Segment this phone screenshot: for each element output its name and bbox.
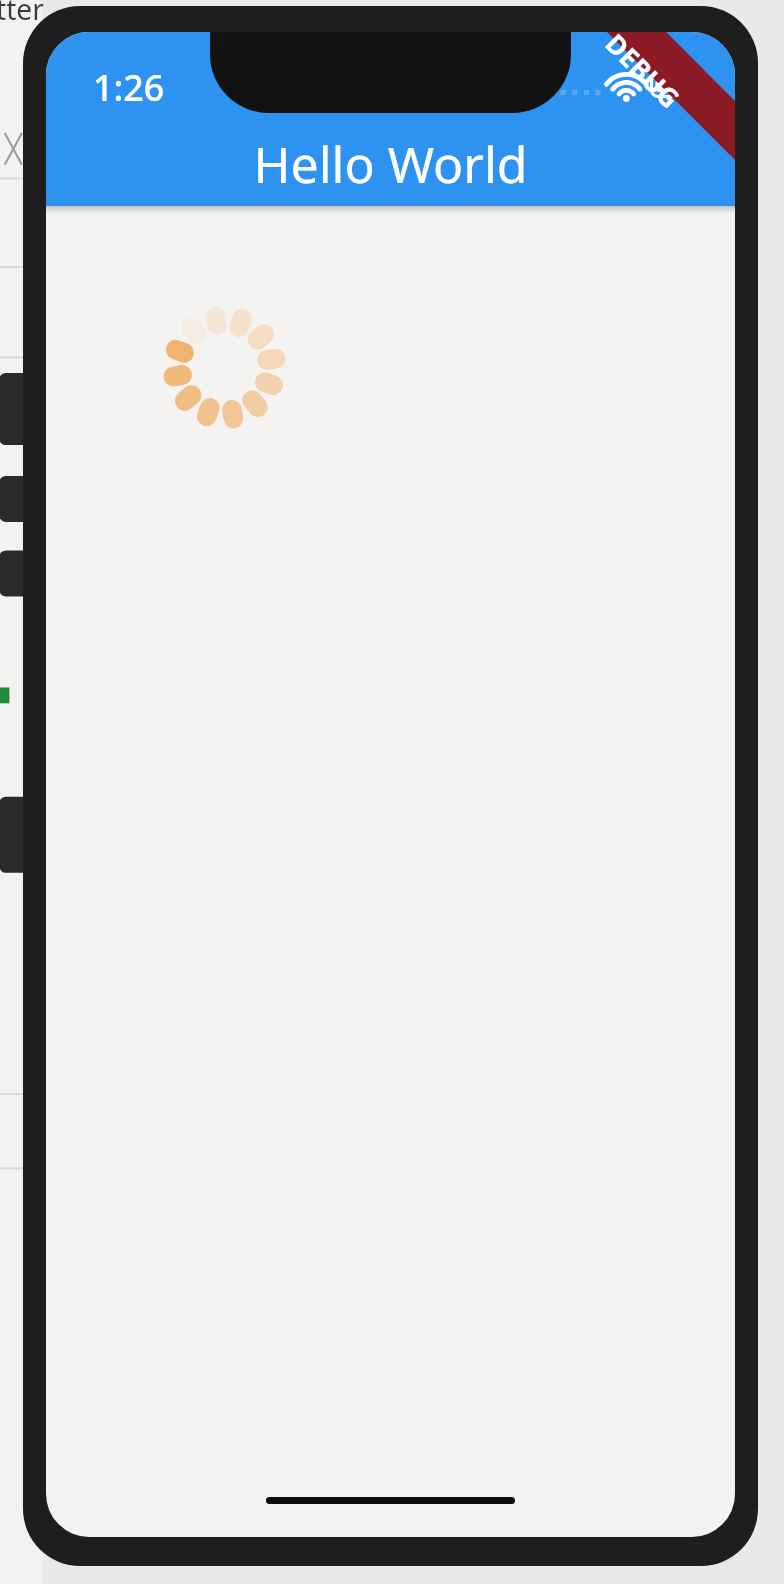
button[interactable]: Hello World: [46, 122, 735, 206]
staticText: DEBUG: [598, 32, 688, 116]
staticText: tter: [0, 0, 44, 28]
staticText: 1:26: [93, 63, 165, 112]
other: Status icons: [559, 62, 707, 110]
staticText: Hello World: [253, 130, 528, 198]
